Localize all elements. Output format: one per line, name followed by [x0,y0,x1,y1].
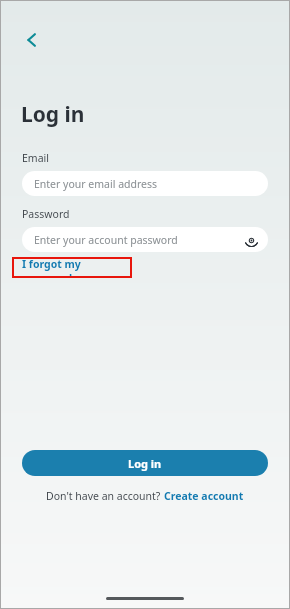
button[interactable]: Enter your account password [22,227,268,252]
staticText: I forgot my password [22,257,132,278]
staticText: Enter your email address [34,177,158,191]
staticText: Don't have an account? [46,489,164,503]
staticText: Enter your account password [34,233,178,247]
staticText: Email [22,151,49,165]
staticText: Log in [21,100,85,129]
button[interactable]: Show password [243,232,259,248]
button[interactable]: Create account [164,489,244,503]
staticText: Log in [128,456,162,471]
staticText: Password [22,207,70,221]
staticText: Create account [164,489,244,503]
button[interactable]: Enter your email address [22,171,268,196]
button[interactable]: I forgot my password [22,257,132,278]
button[interactable]: Log in [22,450,268,476]
button[interactable]: Back [18,26,46,54]
